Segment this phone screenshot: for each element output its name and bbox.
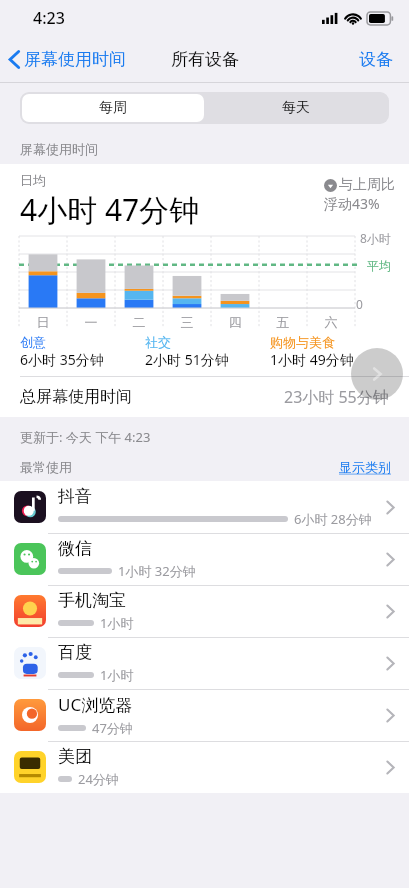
staticText: 日均 xyxy=(20,172,46,188)
staticText: 百度 xyxy=(58,642,92,663)
staticText: 日 xyxy=(19,314,67,330)
staticText: 0 xyxy=(356,296,363,312)
button[interactable]: 美团 xyxy=(0,741,409,793)
staticText: 最常使用 xyxy=(20,459,339,475)
staticText: 8小时 xyxy=(360,230,391,246)
staticText: 4小时 47分钟 xyxy=(20,189,200,230)
staticText: 23小时 55分钟 xyxy=(284,386,389,408)
staticText: 1小时 32分钟 xyxy=(118,562,196,580)
staticText: 屏幕使用时间 xyxy=(20,141,98,157)
staticText: 购物与美食 xyxy=(270,334,335,350)
staticText: 三 xyxy=(163,314,211,330)
staticText: 总屏幕使用时间 xyxy=(20,387,284,407)
staticText: 所有设备 xyxy=(171,49,239,70)
staticText: 1小时 xyxy=(100,614,134,632)
staticText: 抖音 xyxy=(58,486,92,507)
button[interactable]: 抖音 xyxy=(0,481,409,533)
staticText: UC浏览器 xyxy=(58,693,133,716)
button[interactable]: 屏幕使用时间 xyxy=(8,49,126,70)
staticText: 社交 xyxy=(145,334,171,350)
button[interactable]: 百度 xyxy=(0,637,409,689)
button[interactable]: UC浏览器 xyxy=(0,689,409,741)
staticText: 6小时 35分钟 xyxy=(20,350,104,369)
staticText: 24分钟 xyxy=(78,770,119,788)
staticText: 6小时 28分钟 xyxy=(294,510,372,528)
staticText: 平均 xyxy=(367,258,391,273)
staticText: 一 xyxy=(67,314,115,330)
staticText: 五 xyxy=(259,314,307,330)
staticText: 二 xyxy=(115,314,163,330)
staticText: 更新于: 今天 下午 4:23 xyxy=(20,428,151,446)
staticText: 六 xyxy=(307,314,355,330)
button[interactable]: Next xyxy=(351,348,403,400)
staticText: 美团 xyxy=(58,746,92,767)
staticText: 浮动43% xyxy=(324,194,380,213)
staticText: 与上周比 xyxy=(339,176,395,194)
button[interactable]: 微信 xyxy=(0,533,409,585)
staticText: 屏幕使用时间 xyxy=(24,49,126,70)
staticText: 1小时 xyxy=(100,666,134,684)
button[interactable]: 设备 xyxy=(359,49,393,70)
staticText: 创意 xyxy=(20,334,46,350)
staticText: 四 xyxy=(211,314,259,330)
button[interactable]: 手机淘宝 xyxy=(0,585,409,637)
button[interactable]: 显示类别 xyxy=(339,459,391,475)
staticText: 1小时 49分钟 xyxy=(270,350,354,369)
button[interactable]: 每天 xyxy=(204,94,387,122)
staticText: 2小时 51分钟 xyxy=(145,350,229,369)
staticText: 每天 xyxy=(282,99,310,117)
staticText: 4:23 xyxy=(33,7,65,29)
staticText: 47分钟 xyxy=(92,719,133,737)
staticText: 微信 xyxy=(58,538,92,559)
staticText: 每周 xyxy=(99,99,127,117)
button[interactable]: 每周 xyxy=(22,94,204,122)
staticText: 手机淘宝 xyxy=(58,590,126,611)
